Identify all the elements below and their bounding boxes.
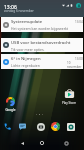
staticText: 13:00 xyxy=(75,57,83,61)
staticText: Lichte regenbuien xyxy=(11,63,40,68)
button[interactable]: Systeemupdate xyxy=(1,17,83,32)
staticText: Het systeem kan worden bijgewerkt xyxy=(11,26,69,31)
button[interactable]: Messages xyxy=(18,122,27,131)
button[interactable]: Camera xyxy=(36,122,45,131)
staticText: 6° in Nijmegen xyxy=(11,56,41,62)
button[interactable]: Home xyxy=(35,136,49,150)
button[interactable]: Account xyxy=(76,3,81,8)
button[interactable]: Back xyxy=(15,136,29,150)
staticText: 13:04 xyxy=(75,20,83,24)
staticText: Play Store xyxy=(62,101,76,105)
staticText: 10 november xyxy=(67,61,83,69)
staticText: Google xyxy=(5,108,16,112)
button[interactable]: Google xyxy=(2,97,19,112)
button[interactable]: App xyxy=(66,122,75,131)
button[interactable]: Chrome xyxy=(51,122,60,131)
staticText: USB voor bestandsoverdracht xyxy=(11,40,71,46)
staticText: zondag 6 november xyxy=(4,9,34,13)
button[interactable]: Play Store xyxy=(60,88,78,105)
staticText: Tik voor meer opties. xyxy=(11,47,45,52)
button[interactable]: 6° in Nijmegen xyxy=(1,54,83,69)
button[interactable]: Recents xyxy=(59,136,73,150)
button[interactable]: Phone xyxy=(3,122,12,131)
button[interactable]: USB voor bestandsoverdracht xyxy=(1,38,83,52)
staticText: 13:06 xyxy=(4,4,17,11)
staticText: Systeemupdate xyxy=(11,19,43,25)
